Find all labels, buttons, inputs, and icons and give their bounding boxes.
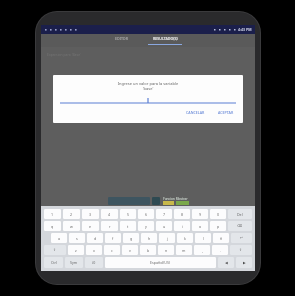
button[interactable]: r	[101, 221, 118, 231]
button[interactable]: w	[63, 221, 80, 231]
button[interactable]: ⇧	[230, 245, 252, 255]
staticText: n	[165, 248, 168, 253]
staticText: 4:43 PM	[238, 27, 252, 32]
staticText: c	[111, 248, 113, 253]
staticText: Expresion para 'Base'	[47, 52, 81, 57]
button[interactable]: x	[86, 245, 102, 255]
button[interactable]: j	[159, 233, 175, 243]
staticText: j	[167, 236, 168, 241]
staticText: 5	[127, 212, 130, 217]
button[interactable]: 2	[63, 209, 80, 219]
button[interactable]: EDITOR	[112, 36, 131, 45]
button[interactable]: z	[68, 245, 84, 255]
staticText: Español(US)	[150, 260, 171, 265]
staticText: g	[130, 236, 133, 241]
button[interactable]: ▶	[236, 257, 252, 268]
button[interactable]: c	[104, 245, 120, 255]
staticText: 4	[108, 212, 111, 217]
staticText: o	[199, 224, 202, 229]
button[interactable]: q	[44, 221, 61, 231]
button[interactable]: ◀	[218, 257, 234, 268]
staticText: Ctrl	[51, 260, 57, 265]
staticText: Ingrese un valor para la variable	[60, 81, 236, 86]
staticText: ,	[202, 248, 203, 253]
button[interactable]: t	[120, 221, 136, 231]
button[interactable]: ñ	[213, 233, 229, 243]
button[interactable]: g	[123, 233, 139, 243]
button[interactable]: ACEPTAR	[216, 109, 236, 116]
staticText: 7	[163, 212, 166, 217]
button[interactable]: ,	[194, 245, 210, 255]
staticText: x	[93, 248, 95, 253]
button[interactable]: v	[122, 245, 138, 255]
button[interactable]: o	[192, 221, 208, 231]
staticText: Funcion Mostrar	[163, 197, 188, 201]
button[interactable]: 6	[138, 209, 154, 219]
staticText: m	[182, 248, 186, 253]
button[interactable]: a	[51, 233, 67, 243]
button[interactable]: u	[156, 221, 172, 231]
button[interactable]: 9	[192, 209, 208, 219]
button[interactable]: Del	[228, 209, 252, 219]
staticText: a	[58, 236, 61, 241]
button[interactable]: b	[140, 245, 156, 255]
staticText: Sym	[70, 260, 78, 265]
staticText: 3	[89, 212, 92, 217]
button[interactable]: y	[138, 221, 154, 231]
button[interactable]: k	[177, 233, 193, 243]
button[interactable]: ⇧	[44, 245, 66, 255]
staticText: k	[184, 236, 186, 241]
staticText: ⇧	[239, 248, 243, 252]
button[interactable]: ἱ0	[85, 257, 103, 268]
staticText: i	[182, 224, 183, 229]
staticText: r	[109, 224, 111, 229]
staticText: ⌫	[237, 224, 243, 228]
button[interactable]: 3	[82, 209, 99, 219]
button[interactable]: ⌫	[228, 221, 252, 231]
staticText: 9	[199, 212, 202, 217]
staticText: 0	[217, 212, 220, 217]
button[interactable]: 0	[210, 209, 226, 219]
staticText: CANCELAR	[186, 110, 205, 115]
staticText: ἱ0	[92, 260, 96, 265]
staticText: ACEPTAR	[218, 110, 234, 115]
button[interactable]: p	[210, 221, 226, 231]
button[interactable]: 5	[120, 209, 136, 219]
staticText: ◀	[225, 261, 228, 265]
button[interactable]: d	[87, 233, 103, 243]
button[interactable]: 8	[174, 209, 190, 219]
button[interactable]: CANCELAR	[184, 109, 207, 116]
staticText: t	[127, 224, 129, 229]
button[interactable]: s	[69, 233, 85, 243]
button[interactable]: l	[195, 233, 211, 243]
staticText: EDITOR	[115, 36, 128, 41]
button[interactable]: Ctrl	[44, 257, 63, 268]
staticText: .	[220, 248, 221, 253]
button[interactable]: 1	[44, 209, 61, 219]
staticText: 2	[70, 212, 73, 217]
staticText: w	[70, 224, 73, 229]
staticText: 8	[181, 212, 184, 217]
staticText: ñ	[220, 236, 223, 241]
button[interactable]: Sym	[65, 257, 83, 268]
button[interactable]: ↵	[231, 233, 252, 243]
button[interactable]: n	[158, 245, 174, 255]
button[interactable]: h	[141, 233, 157, 243]
staticText: u	[163, 224, 166, 229]
button[interactable]: 7	[156, 209, 172, 219]
button[interactable]: 4	[101, 209, 118, 219]
button[interactable]: m	[176, 245, 192, 255]
button[interactable]: f	[105, 233, 121, 243]
staticText: s	[76, 236, 78, 241]
button[interactable]: Español(US)	[105, 257, 216, 268]
button[interactable]: i	[174, 221, 190, 231]
staticText: ⇧	[53, 248, 57, 252]
staticText: e	[89, 224, 92, 229]
button[interactable]: RESULTADO(S)	[145, 36, 185, 45]
staticText: z	[75, 248, 77, 253]
button[interactable]: e	[82, 221, 99, 231]
staticText: p	[217, 224, 220, 229]
